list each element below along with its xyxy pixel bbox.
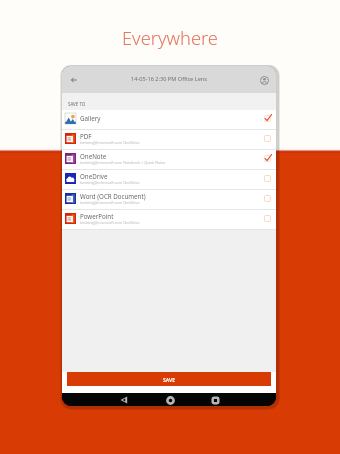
staticText: OneNote [80, 152, 107, 160]
button[interactable]: Back [67, 73, 81, 87]
button[interactable]: Recents [209, 394, 221, 406]
staticText: kmtsing@microsoft.com OneDrive [80, 140, 140, 145]
staticText: PDF [80, 132, 92, 140]
staticText: kmtsing@microsoft.com OneDrive [80, 180, 140, 185]
staticText: SAVE TO [68, 101, 86, 107]
staticText: Gallery [80, 114, 101, 122]
button[interactable]: SAVE [67, 372, 271, 386]
button[interactable]: OneDrive [62, 170, 276, 190]
staticText: SAVE [163, 376, 176, 383]
button[interactable]: OneNote [62, 150, 276, 170]
button[interactable]: Home [164, 394, 176, 406]
staticText: Word (OCR Document) [80, 192, 146, 200]
staticText: 14-05-16 2:30 PM Office Lens [81, 75, 257, 83]
button[interactable]: PowerPoint [62, 210, 276, 230]
staticText: OneDrive [80, 172, 108, 180]
button[interactable]: Account [257, 73, 271, 87]
staticText: Everywhere [122, 25, 218, 50]
staticText: kmtsing@microsoft.com OneDrive [80, 220, 140, 225]
staticText: kmtsing@microsoft.com OneDrive [80, 200, 140, 205]
staticText: PowerPoint [80, 212, 114, 220]
button[interactable]: Word (OCR Document) [62, 190, 276, 210]
staticText: kmtsing@microsoft.com Notebook > Quick N… [80, 160, 166, 165]
button[interactable]: Back [118, 394, 130, 406]
button[interactable]: Gallery [62, 110, 276, 130]
button[interactable]: PDF [62, 130, 276, 150]
